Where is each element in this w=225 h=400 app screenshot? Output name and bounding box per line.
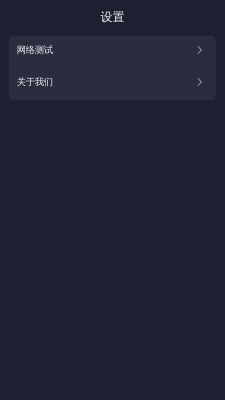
staticText: 设置 (100, 10, 124, 24)
button[interactable]: 关于我们 (9, 68, 216, 100)
button[interactable]: 网络测试 (9, 36, 216, 68)
staticText: 关于我们 (17, 76, 53, 88)
staticText: 网络测试 (17, 44, 53, 56)
